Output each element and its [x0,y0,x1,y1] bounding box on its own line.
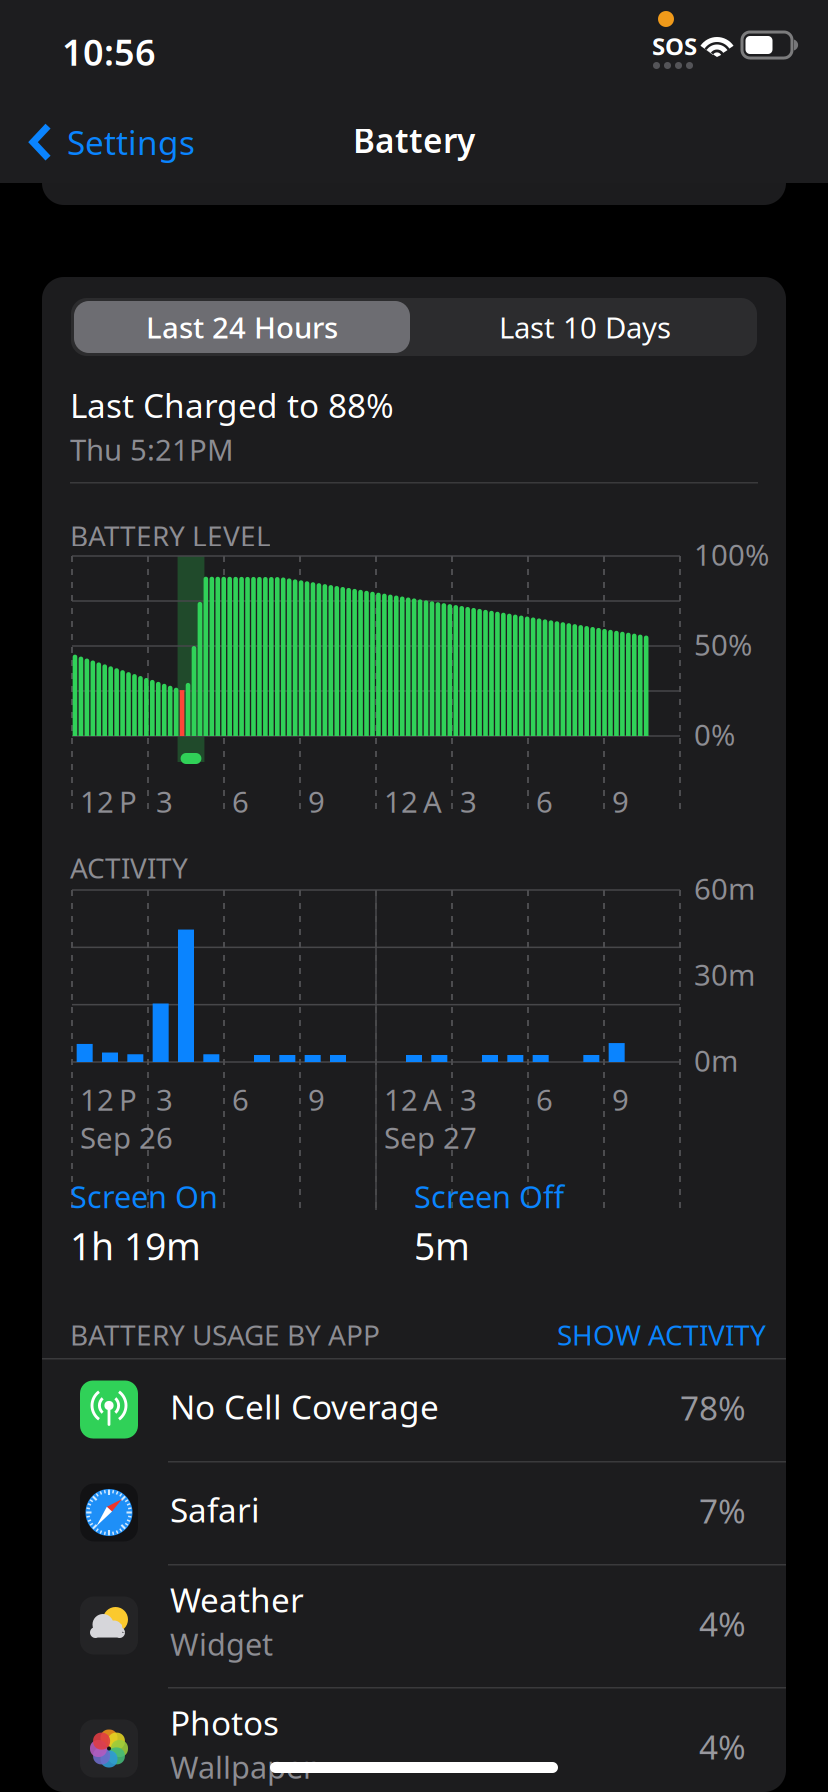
staticText: Widget [170,1623,273,1664]
staticText: 0m [694,1041,738,1080]
staticText: 50% [694,625,752,664]
button[interactable]: Last 10 Days [413,298,757,356]
staticText: Thu 5:21PM [70,430,234,469]
staticText: 100% [694,535,769,574]
staticText: 5m [414,1221,470,1271]
staticText: 12 P [80,782,137,821]
staticText: Safari [170,1487,260,1532]
staticText: No Cell Coverage [170,1384,439,1429]
staticText: Settings [67,120,195,164]
button[interactable]: No Cell Coverage [42,1358,786,1461]
button[interactable]: Settings [24,114,199,170]
staticText: 10:56 [62,28,156,76]
staticText: Screen On [70,1176,218,1217]
button[interactable]: Last 24 Hours [74,301,410,353]
staticText: 12 A [384,1080,442,1119]
staticText: SOS [652,30,697,62]
button[interactable]: Safari [42,1461,786,1564]
staticText: 9 [612,782,629,821]
staticText: 4% [699,1724,746,1769]
staticText: 78% [680,1385,746,1430]
staticText: 9 [308,782,325,821]
staticText: SHOW ACTIVITY [557,1316,766,1353]
staticText: 60m [694,869,755,908]
staticText: Weather [170,1577,304,1622]
staticText: 1h 19m [70,1221,201,1271]
staticText: 0% [694,715,735,754]
staticText: 9 [612,1080,629,1119]
staticText: 3 [156,782,173,821]
staticText: 6 [536,782,553,821]
staticText: 3 [460,1080,477,1119]
staticText: Wallpaper [170,1746,316,1787]
button[interactable]: Weather [42,1564,786,1687]
staticText: Sep 27 [384,1118,477,1157]
staticText: 3 [156,1080,173,1119]
staticText: Battery [353,118,475,162]
staticText: 12 P [80,1080,137,1119]
staticText: BATTERY USAGE BY APP [70,1316,380,1353]
staticText: Photos [170,1700,279,1745]
staticText: Sep 26 [80,1118,173,1157]
button[interactable]: Photos [42,1687,786,1792]
staticText: 12 A [384,782,442,821]
button[interactable]: SHOW ACTIVITY [557,1316,766,1353]
staticText: 4% [699,1601,746,1646]
staticText: Last Charged to 88% [70,383,394,427]
staticText: 30m [694,955,755,994]
staticText: 7% [699,1488,746,1533]
staticText: Last 10 Days [499,307,671,346]
staticText: 3 [460,782,477,821]
staticText: 9 [308,1080,325,1119]
staticText: Last 24 Hours [146,307,338,346]
staticText: BATTERY LEVEL [70,517,271,554]
staticText: Screen Off [414,1176,564,1217]
staticText: 6 [232,782,249,821]
staticText: ACTIVITY [70,849,188,886]
staticText: 6 [232,1080,249,1119]
staticText: 6 [536,1080,553,1119]
